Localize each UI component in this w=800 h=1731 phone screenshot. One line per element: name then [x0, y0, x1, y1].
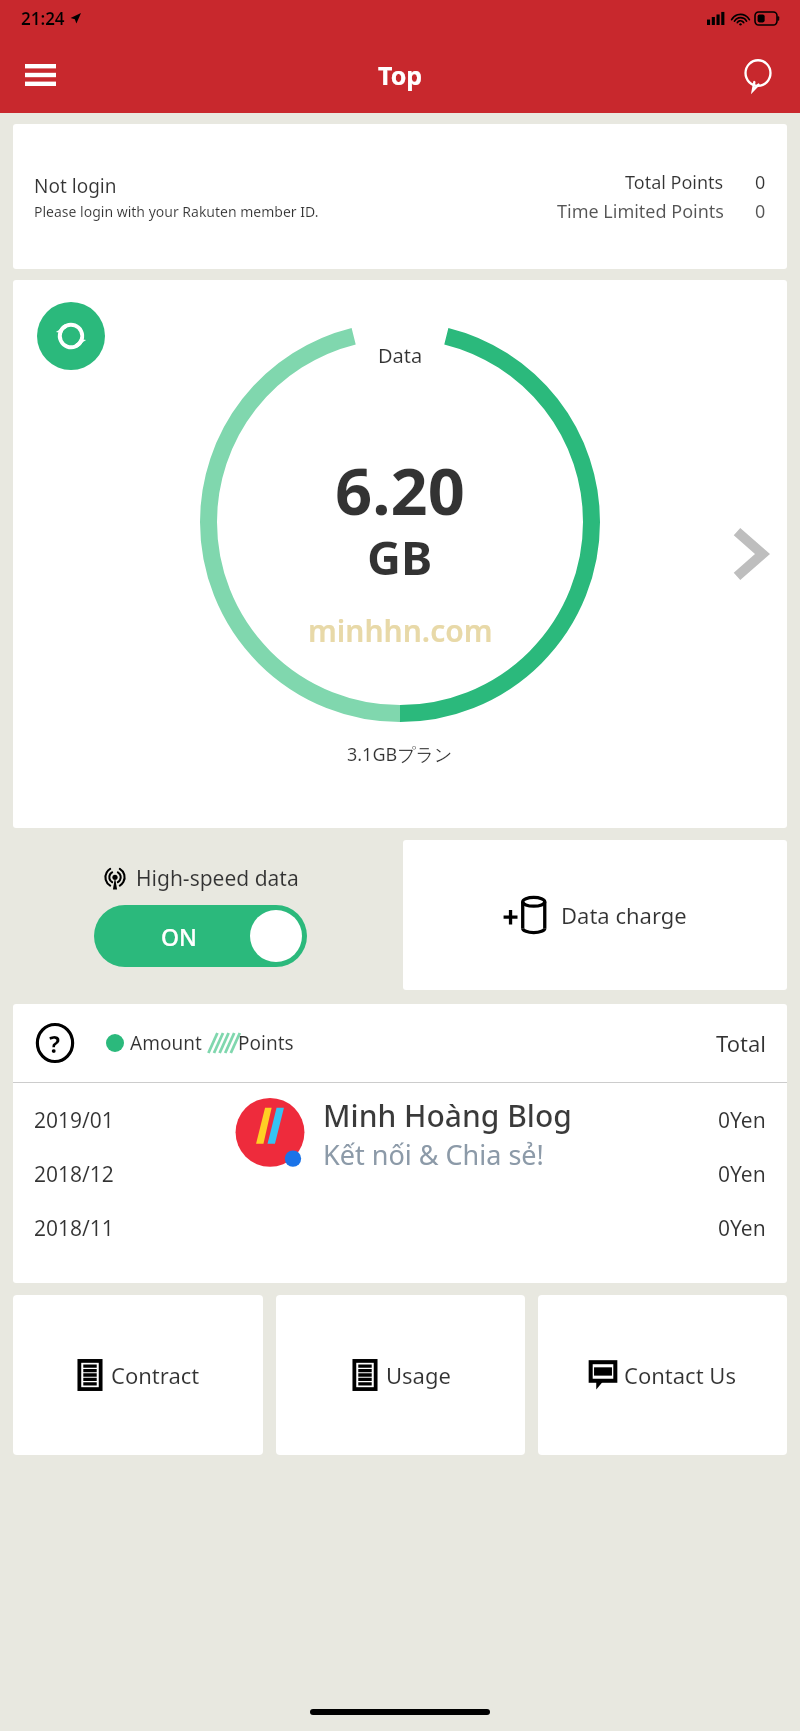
- staticText: 0Yen: [718, 1160, 766, 1189]
- staticText: Usage: [386, 1360, 451, 1390]
- staticText: Time Limited Points: [557, 199, 724, 224]
- staticText: ?: [49, 1028, 60, 1059]
- staticText: Please login with your Rakuten member ID…: [34, 202, 319, 221]
- staticText: minhhn.com: [308, 610, 493, 651]
- button[interactable]: ON: [94, 905, 307, 967]
- button[interactable]: Data charge: [403, 840, 787, 990]
- staticText: Contract: [111, 1360, 200, 1390]
- button[interactable]: Not login: [13, 124, 787, 269]
- button[interactable]: 2018/12: [34, 1147, 766, 1201]
- staticText: 3.1GBプラン: [347, 742, 453, 767]
- staticText: 0: [755, 170, 766, 195]
- staticText: Contact Us: [624, 1360, 736, 1390]
- staticText: Data: [378, 342, 423, 369]
- button[interactable]: Next: [721, 526, 777, 582]
- staticText: 0Yen: [718, 1106, 766, 1135]
- staticText: Points: [238, 1030, 294, 1056]
- button[interactable]: 2018/11: [34, 1201, 766, 1255]
- button[interactable]: 2019/01: [34, 1093, 766, 1147]
- staticText: 2018/11: [34, 1214, 114, 1243]
- button[interactable]: Contact Us: [538, 1295, 787, 1455]
- staticText: Minh Hoàng Blog: [323, 1095, 572, 1136]
- staticText: Amount: [130, 1030, 202, 1056]
- staticText: ON: [161, 921, 197, 952]
- staticText: 21:24: [21, 7, 65, 30]
- button[interactable]: Chat support: [734, 51, 782, 99]
- button[interactable]: Refresh: [37, 302, 105, 370]
- staticText: Top: [378, 58, 423, 92]
- staticText: 0Yen: [718, 1214, 766, 1243]
- staticText: GB: [367, 525, 433, 589]
- staticText: High-speed data: [136, 864, 299, 893]
- staticText: 2018/12: [34, 1160, 114, 1189]
- staticText: 0: [755, 199, 766, 224]
- button[interactable]: Usage: [276, 1295, 525, 1455]
- staticText: Kết nối & Chia sẻ!: [323, 1136, 544, 1173]
- button[interactable]: ?: [34, 1004, 766, 1082]
- button[interactable]: Contract: [13, 1295, 263, 1455]
- staticText: Not login: [34, 173, 117, 199]
- button[interactable]: Menu: [16, 51, 64, 99]
- staticText: 2019/01: [34, 1106, 114, 1135]
- staticText: Data charge: [561, 900, 687, 930]
- staticText: Total Points: [625, 170, 724, 195]
- button[interactable]: Refresh: [13, 280, 787, 828]
- staticText: Total: [716, 1028, 766, 1058]
- staticText: 6.20: [335, 446, 465, 535]
